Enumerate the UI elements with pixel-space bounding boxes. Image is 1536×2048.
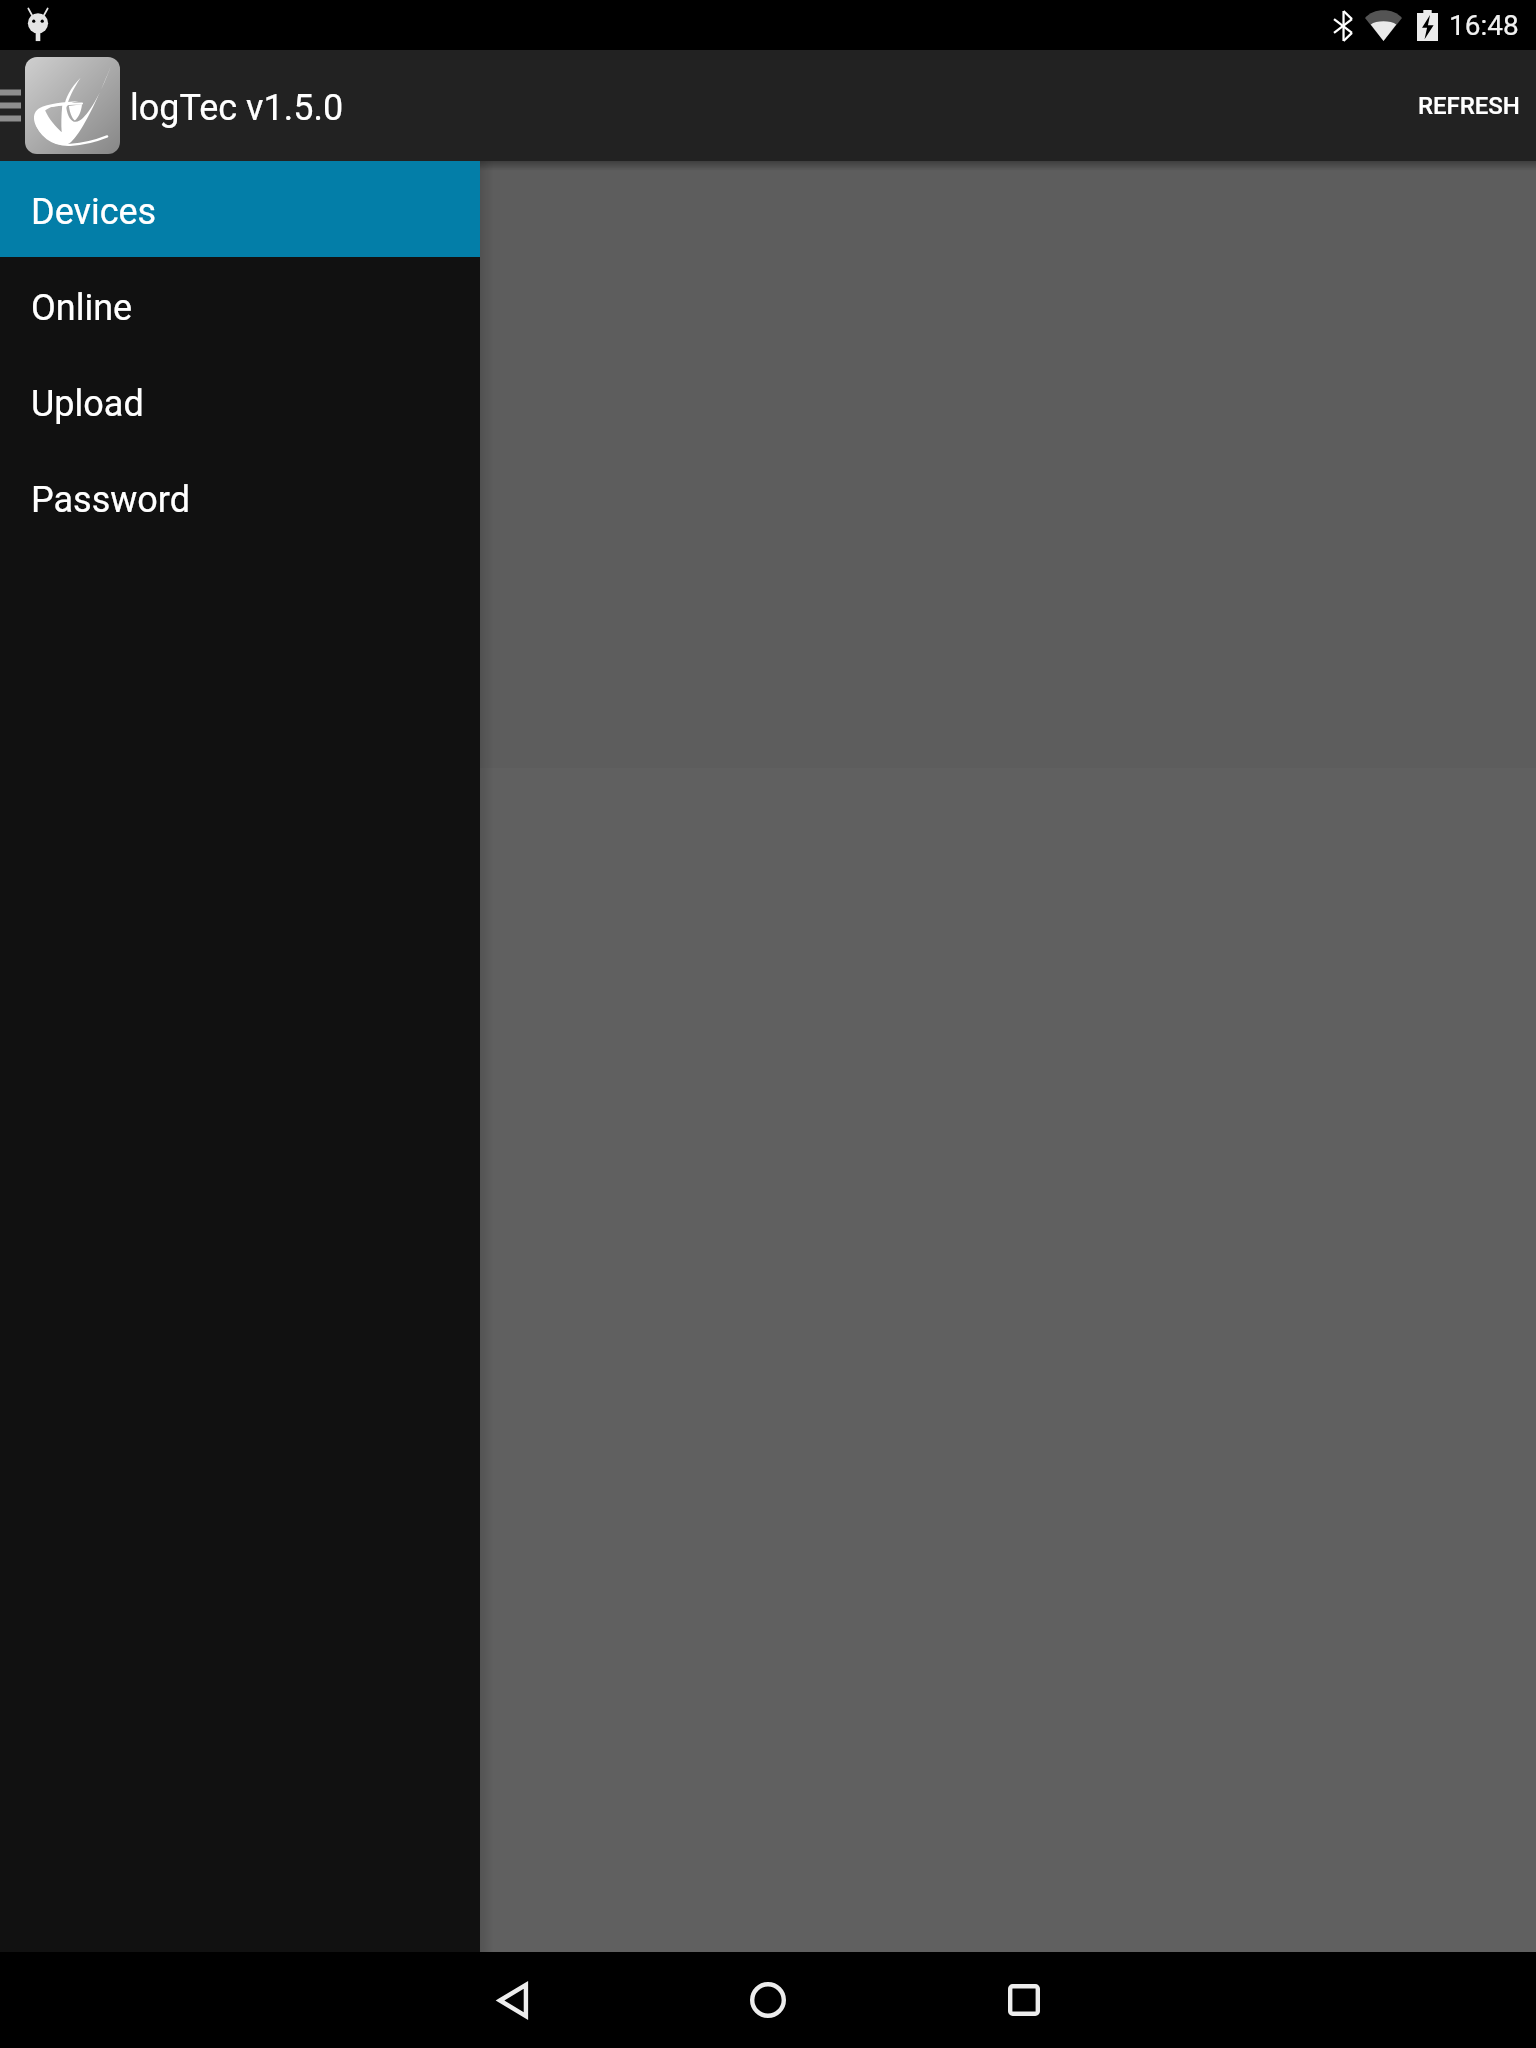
- button[interactable]: Back: [428, 1952, 596, 2048]
- button[interactable]: Upload: [0, 353, 480, 449]
- staticText: 16:48: [1449, 9, 1519, 42]
- button[interactable]: Home: [684, 1952, 852, 2048]
- button[interactable]: Recent apps: [940, 1952, 1108, 2048]
- button[interactable]: Devices: [0, 161, 480, 257]
- staticText: Online: [31, 287, 133, 329]
- staticText: Devices: [31, 191, 157, 233]
- button[interactable]: logTec v1.5.0: [25, 50, 334, 161]
- button[interactable]: REFRESH: [1402, 68, 1536, 144]
- button[interactable]: Open navigation drawer: [0, 50, 21, 161]
- staticText: Password: [31, 479, 191, 521]
- staticText: logTec v1.5.0: [130, 87, 344, 129]
- staticText: Upload: [31, 383, 144, 425]
- staticText: REFRESH: [1418, 92, 1520, 120]
- button[interactable]: Password: [0, 449, 480, 545]
- button[interactable]: Online: [0, 257, 480, 353]
